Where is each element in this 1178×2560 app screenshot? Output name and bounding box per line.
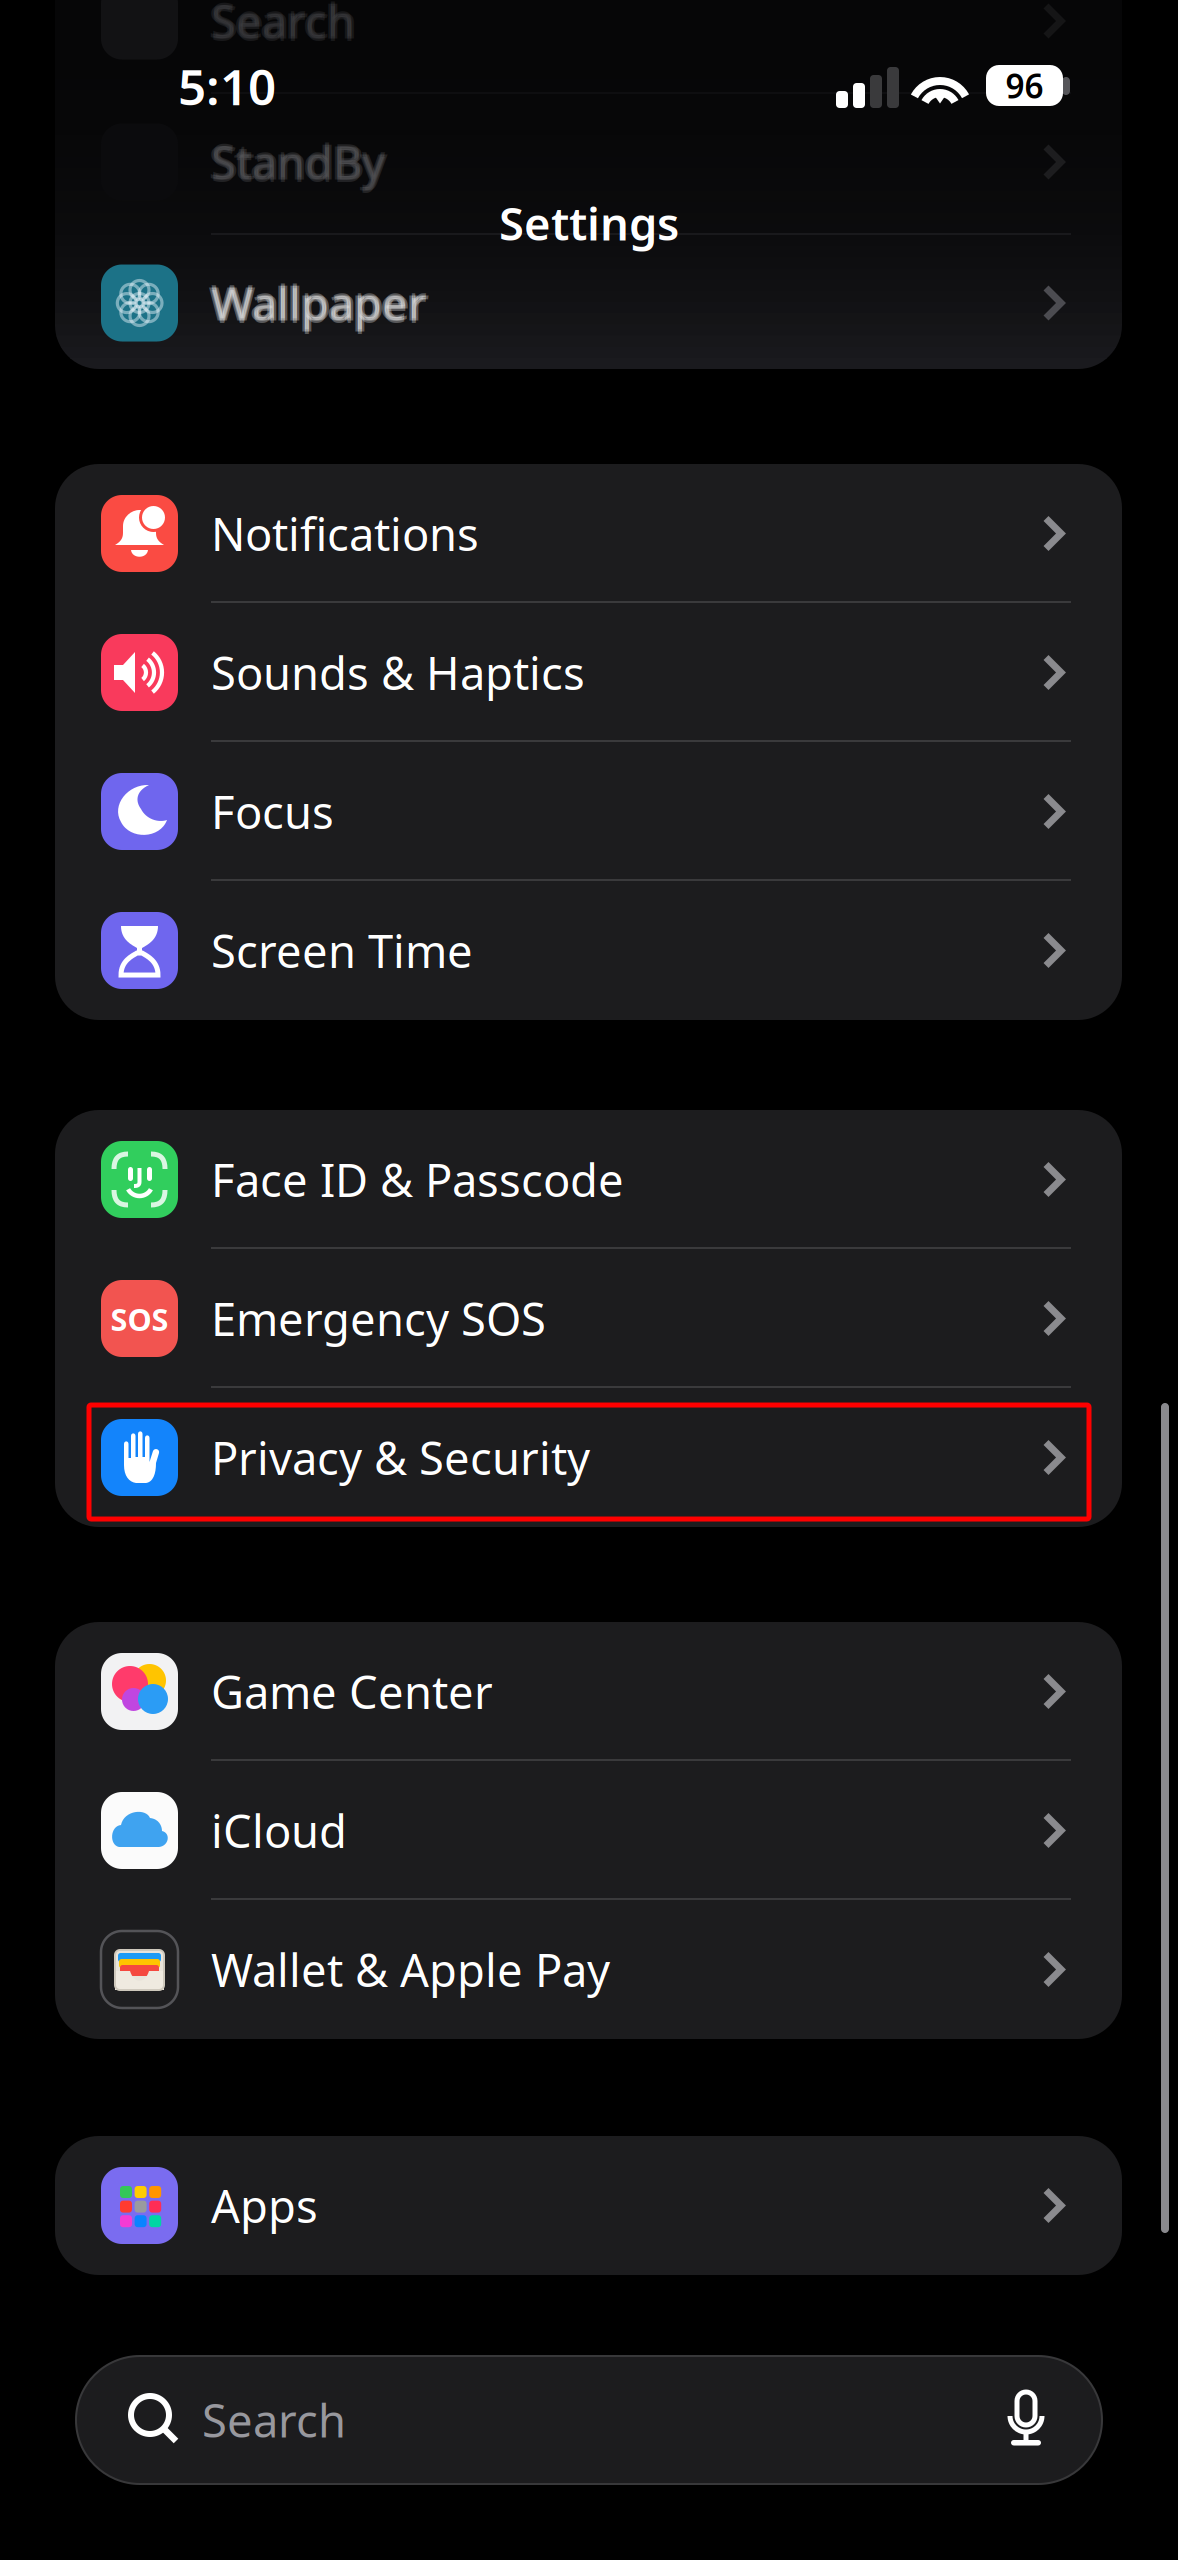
staticText: Notifications xyxy=(211,503,479,564)
button[interactable]: Wallpaper xyxy=(55,233,1122,372)
staticText: Search xyxy=(211,0,355,53)
staticText: Face ID & Passcode xyxy=(211,1149,624,1210)
staticText: Sounds & Haptics xyxy=(211,642,585,703)
staticText: Wallet & Apple Pay xyxy=(211,1939,610,2000)
staticText: Settings xyxy=(499,193,679,253)
staticText: Search xyxy=(211,0,355,51)
staticText: Search xyxy=(211,0,355,49)
staticText: Screen Time xyxy=(211,920,473,981)
staticText: StandBy xyxy=(211,134,385,194)
button[interactable]: Focus xyxy=(55,742,1122,881)
staticText: Wallpaper xyxy=(213,273,429,333)
button[interactable]: Privacy & Security xyxy=(55,1388,1122,1527)
button[interactable]: Search xyxy=(76,2356,1102,2484)
staticText: Wallpaper xyxy=(209,273,425,333)
staticText: 96 xyxy=(1005,63,1043,108)
button[interactable]: Notifications xyxy=(55,464,1122,603)
staticText: 5:10 xyxy=(178,53,276,119)
staticText: StandBy xyxy=(213,132,387,192)
staticText: Wallpaper xyxy=(211,275,427,335)
staticText: Privacy & Security xyxy=(211,1427,590,1488)
staticText: StandBy xyxy=(211,129,385,190)
button[interactable]: Apps xyxy=(55,2136,1122,2275)
staticText: StandBy xyxy=(211,132,385,192)
button[interactable]: StandBy xyxy=(55,92,1122,231)
staticText: Search xyxy=(202,2390,346,2450)
staticText: Apps xyxy=(211,2175,318,2236)
staticText: SOS xyxy=(110,1299,168,1339)
button[interactable]: Wallet & Apple Pay xyxy=(55,1900,1122,2039)
staticText: Emergency SOS xyxy=(211,1288,546,1349)
staticText: Wallpaper xyxy=(211,270,427,331)
staticText: StandBy xyxy=(209,132,383,192)
staticText: Focus xyxy=(211,781,334,842)
staticText: Game Center xyxy=(211,1661,493,1722)
staticText: iCloud xyxy=(211,1800,347,1861)
staticText: Search xyxy=(213,0,357,51)
button[interactable]: Screen Time xyxy=(55,881,1122,1020)
staticText: Search xyxy=(209,0,353,51)
button[interactable]: Search xyxy=(55,0,1122,90)
button[interactable]: iCloud xyxy=(55,1761,1122,1900)
button[interactable]: Face ID & Passcode xyxy=(55,1110,1122,1249)
staticText: Wallpaper xyxy=(211,273,427,333)
button[interactable]: SOS xyxy=(55,1249,1122,1388)
button[interactable]: Sounds & Haptics xyxy=(55,603,1122,742)
button[interactable]: Game Center xyxy=(55,1622,1122,1761)
